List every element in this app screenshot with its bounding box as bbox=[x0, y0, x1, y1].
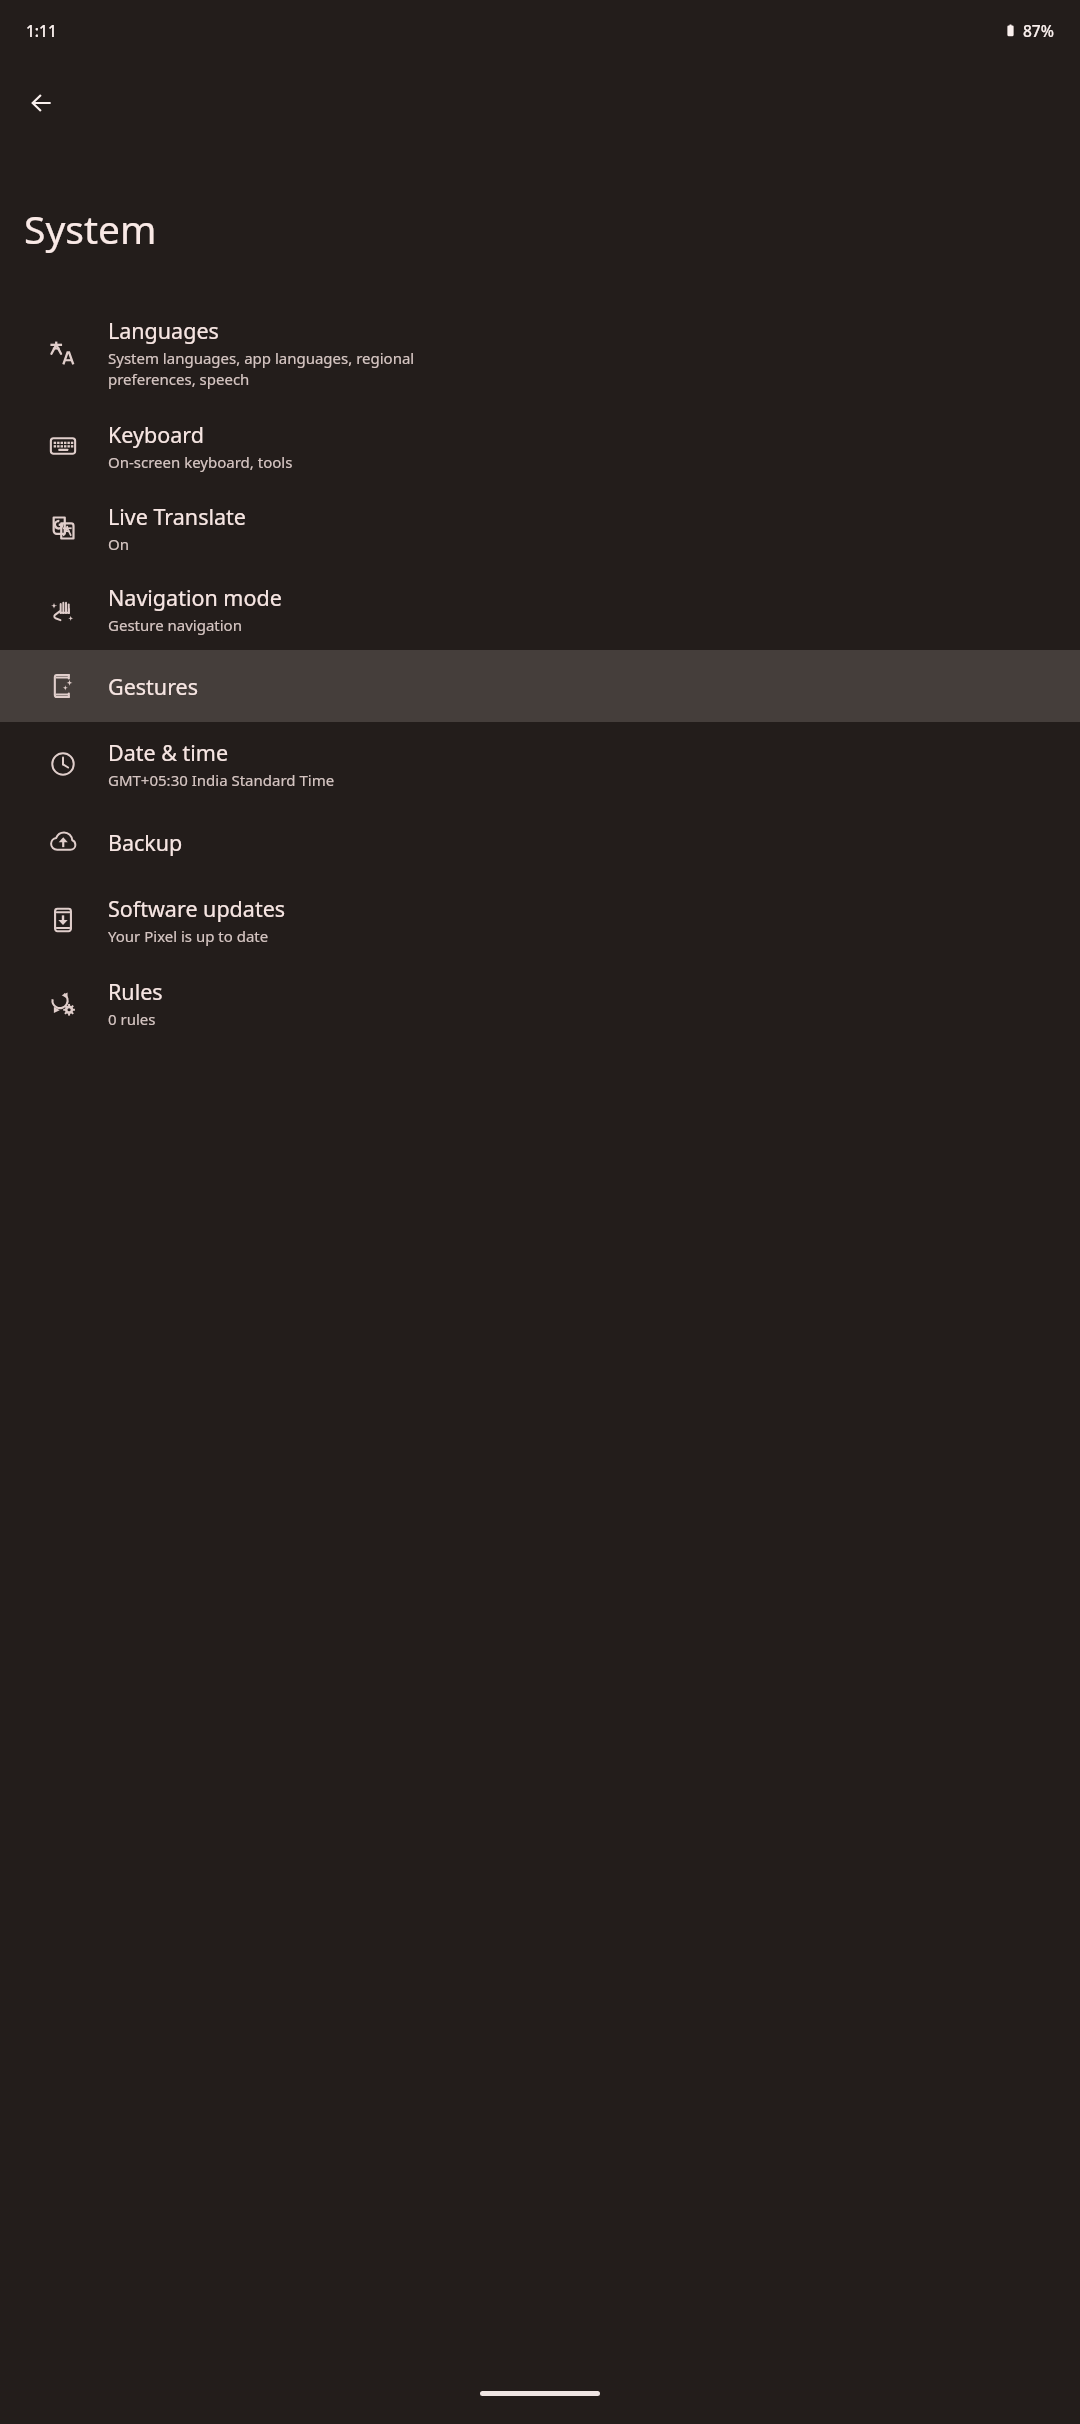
button[interactable]: Back bbox=[10, 71, 74, 135]
staticText: Date & time bbox=[108, 738, 229, 767]
staticText: On-screen keyboard, tools bbox=[108, 452, 293, 472]
staticText: Software updates bbox=[108, 894, 286, 923]
staticText: Keyboard bbox=[108, 420, 204, 449]
button[interactable]: Date & time bbox=[0, 722, 1080, 806]
staticText: Backup bbox=[108, 828, 183, 857]
staticText: 1:11 bbox=[26, 20, 57, 41]
button[interactable]: Gestures bbox=[0, 650, 1080, 722]
button[interactable]: Languages bbox=[0, 301, 1080, 405]
staticText: GMT+05:30 India Standard Time bbox=[108, 770, 335, 790]
staticText: Navigation mode bbox=[108, 583, 282, 612]
staticText: 87% bbox=[1023, 20, 1054, 41]
staticText: System languages, app languages, regiona… bbox=[108, 348, 415, 390]
button[interactable]: Backup bbox=[0, 806, 1080, 878]
staticText: Languages bbox=[108, 316, 219, 345]
staticText: 0 rules bbox=[108, 1009, 156, 1029]
staticText: Your Pixel is up to date bbox=[108, 926, 269, 946]
button[interactable]: Live Translate bbox=[0, 487, 1080, 568]
staticText: Rules bbox=[108, 977, 163, 1006]
staticText: Gesture navigation bbox=[108, 615, 242, 635]
button[interactable]: Navigation mode bbox=[0, 568, 1080, 650]
staticText: Gestures bbox=[108, 672, 198, 701]
button[interactable]: Keyboard bbox=[0, 405, 1080, 487]
staticText: Live Translate bbox=[108, 502, 246, 531]
button[interactable]: Rules bbox=[0, 961, 1080, 1044]
staticText: On bbox=[108, 534, 129, 554]
staticText: System bbox=[24, 202, 157, 255]
button[interactable]: Software updates bbox=[0, 878, 1080, 961]
